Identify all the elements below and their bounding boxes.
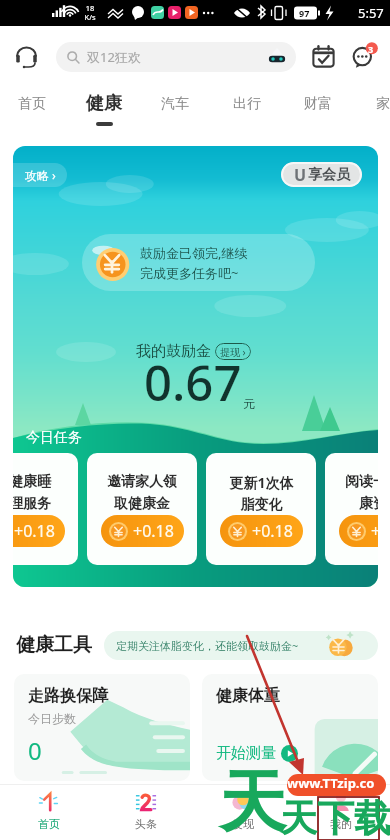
button[interactable]: U [281, 162, 362, 187]
staticText: 双12狂欢 [87, 48, 141, 66]
staticText: 健康工具 [16, 633, 92, 657]
button[interactable]: 首页 [6, 88, 58, 128]
button[interactable]: +0.18 [101, 515, 184, 547]
staticText: +0.18 [14, 520, 55, 542]
staticText: 头条 [135, 817, 157, 831]
staticText: 定期关注体脂变化，还能领取鼓励金~ [116, 638, 299, 653]
staticText: 天下载 [280, 795, 390, 840]
button[interactable]: 家 [357, 88, 390, 128]
button[interactable]: 开始测量 [216, 744, 298, 763]
staticText: 首页 [18, 95, 46, 113]
staticText: 97 [299, 7, 310, 19]
button[interactable]: 邀请家人领 取健康金 [87, 453, 197, 565]
staticText: 5:57 [358, 4, 384, 22]
button[interactable]: +0.18 [339, 515, 378, 547]
button[interactable]: 头条 [97, 785, 194, 840]
button[interactable]: 汽车 [149, 88, 201, 128]
button[interactable]: 鼓励金已领完,继续 完成更多任务吧~ [82, 234, 315, 291]
staticText: 首页 [38, 817, 60, 831]
staticText: 攻略 › [25, 167, 56, 183]
staticText: 邀请家人领 取健康金 [107, 473, 177, 512]
staticText: 开始测量 [216, 744, 276, 763]
staticText: +0.18 [133, 520, 174, 542]
staticText: 我的 [330, 817, 352, 831]
button[interactable]: 阅读一篇健 康资讯 [325, 453, 378, 565]
staticText: 家 [376, 95, 390, 113]
button[interactable]: +0.18 [220, 515, 303, 547]
button[interactable]: 健康 [78, 88, 130, 128]
staticText: 阅读一篇健 康资讯 [345, 473, 378, 512]
button[interactable]: 更新1次体 脂变化 [206, 453, 316, 565]
staticText: 0 [28, 734, 42, 767]
staticText: 鼓励金已领完,继续 完成更多任务吧~ [140, 244, 248, 282]
button[interactable]: 首页 [0, 785, 97, 840]
button[interactable]: 我的 [292, 785, 390, 840]
staticText: 18 K/s [84, 3, 96, 22]
staticText: 今日任务 [26, 429, 82, 447]
staticText: 更新1次体 脂变化 [229, 473, 294, 513]
staticText: 出行 [233, 95, 261, 113]
staticText: 今日步数 [28, 711, 76, 726]
button[interactable]: 健康体重 [202, 674, 378, 781]
staticText: +0.18 [371, 520, 378, 542]
staticText: 财富 [304, 95, 332, 113]
button[interactable]: 财富 [292, 88, 344, 128]
staticText: www.TTzip.com [287, 774, 386, 796]
staticText: 启健康睡 管理服务 [13, 473, 51, 512]
button[interactable]: 双12狂欢 [56, 42, 296, 72]
button[interactable]: Messages [350, 42, 378, 70]
staticText: 我的鼓励金 [136, 342, 211, 361]
button[interactable]: Customer service [13, 44, 39, 70]
button[interactable]: 走路换保障 [14, 674, 190, 781]
staticText: 3 [368, 43, 374, 55]
staticText: 天 [219, 760, 286, 840]
staticText: 走路换保障 [28, 686, 108, 706]
button[interactable]: 启健康睡 管理服务 [13, 453, 78, 565]
staticText: +0.18 [252, 520, 293, 542]
staticText: 0.67 [144, 349, 242, 416]
staticText: 元 [243, 396, 255, 411]
button[interactable]: Calendar [311, 44, 336, 69]
button[interactable]: 提现 › [215, 343, 251, 360]
staticText: 汽车 [161, 95, 189, 113]
button[interactable]: +0.18 [13, 515, 65, 547]
staticText: 发现 [232, 817, 254, 831]
staticText: 健康体重 [216, 686, 280, 706]
button[interactable]: 发现 [194, 785, 292, 840]
staticText: 享会员 [308, 166, 350, 184]
staticText: 提现 › [220, 345, 246, 359]
button[interactable]: 攻略 › [13, 163, 67, 187]
button[interactable]: 定期关注体脂变化，还能领取鼓励金~ [104, 631, 378, 660]
staticText: U [294, 164, 307, 186]
staticText: 健康 [86, 92, 122, 115]
button[interactable]: 出行 [221, 88, 273, 128]
